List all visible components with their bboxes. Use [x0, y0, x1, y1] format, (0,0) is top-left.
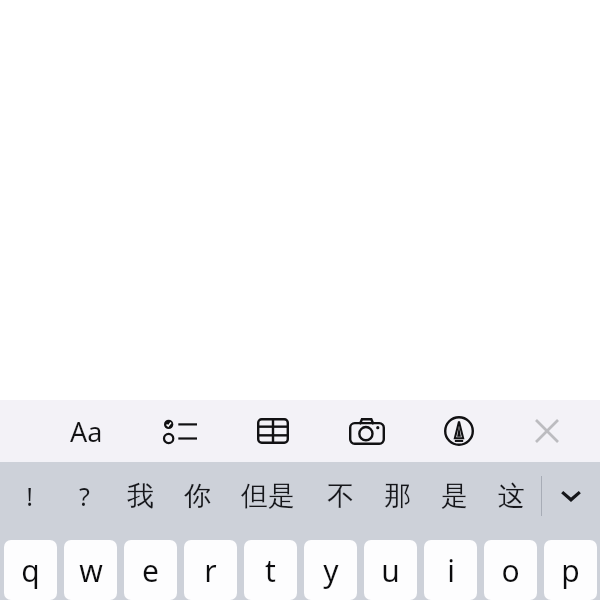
button[interactable]: 这 — [486, 462, 536, 530]
staticText: y — [323, 550, 339, 591]
staticText: 这 — [498, 479, 525, 513]
button[interactable]: o — [484, 540, 537, 600]
button[interactable]: ? — [59, 462, 109, 530]
staticText: t — [265, 550, 276, 591]
staticText: o — [501, 550, 520, 591]
button[interactable]: Close — [521, 405, 573, 457]
staticText: 那 — [384, 479, 411, 513]
staticText: e — [142, 550, 159, 591]
button[interactable]: Expand suggestions — [542, 462, 600, 530]
button[interactable]: ! — [4, 462, 54, 530]
staticText: q — [21, 550, 40, 591]
button[interactable]: 我 — [115, 462, 165, 530]
staticText: w — [79, 550, 103, 591]
button[interactable]: q — [4, 540, 57, 600]
staticText: r — [204, 550, 217, 591]
button[interactable]: e — [124, 540, 177, 600]
staticText: 但是 — [241, 479, 295, 513]
button[interactable]: i — [424, 540, 477, 600]
button[interactable]: Camera — [341, 405, 393, 457]
staticText: 不 — [327, 479, 354, 513]
staticText: 我 — [127, 479, 154, 513]
button[interactable]: Markup — [433, 405, 485, 457]
button[interactable]: 是 — [429, 462, 479, 530]
button[interactable]: w — [64, 540, 117, 600]
staticText: 你 — [184, 479, 211, 513]
button[interactable]: y — [304, 540, 357, 600]
button[interactable]: u — [364, 540, 417, 600]
button[interactable]: Text format — [60, 405, 112, 457]
button[interactable]: 那 — [372, 462, 422, 530]
staticText: 是 — [441, 479, 468, 513]
staticText: p — [561, 550, 580, 591]
staticText: ? — [79, 479, 90, 513]
button[interactable]: r — [184, 540, 237, 600]
staticText: u — [381, 550, 400, 591]
button[interactable]: t — [244, 540, 297, 600]
button[interactable]: 但是 — [229, 462, 307, 530]
button[interactable]: Checklist — [154, 405, 206, 457]
staticText: Aa — [70, 413, 103, 450]
staticText: ! — [26, 479, 33, 513]
button[interactable]: 你 — [172, 462, 222, 530]
button[interactable]: 不 — [315, 462, 365, 530]
staticText: i — [447, 550, 455, 591]
button[interactable]: Table — [247, 405, 299, 457]
button[interactable]: p — [544, 540, 597, 600]
